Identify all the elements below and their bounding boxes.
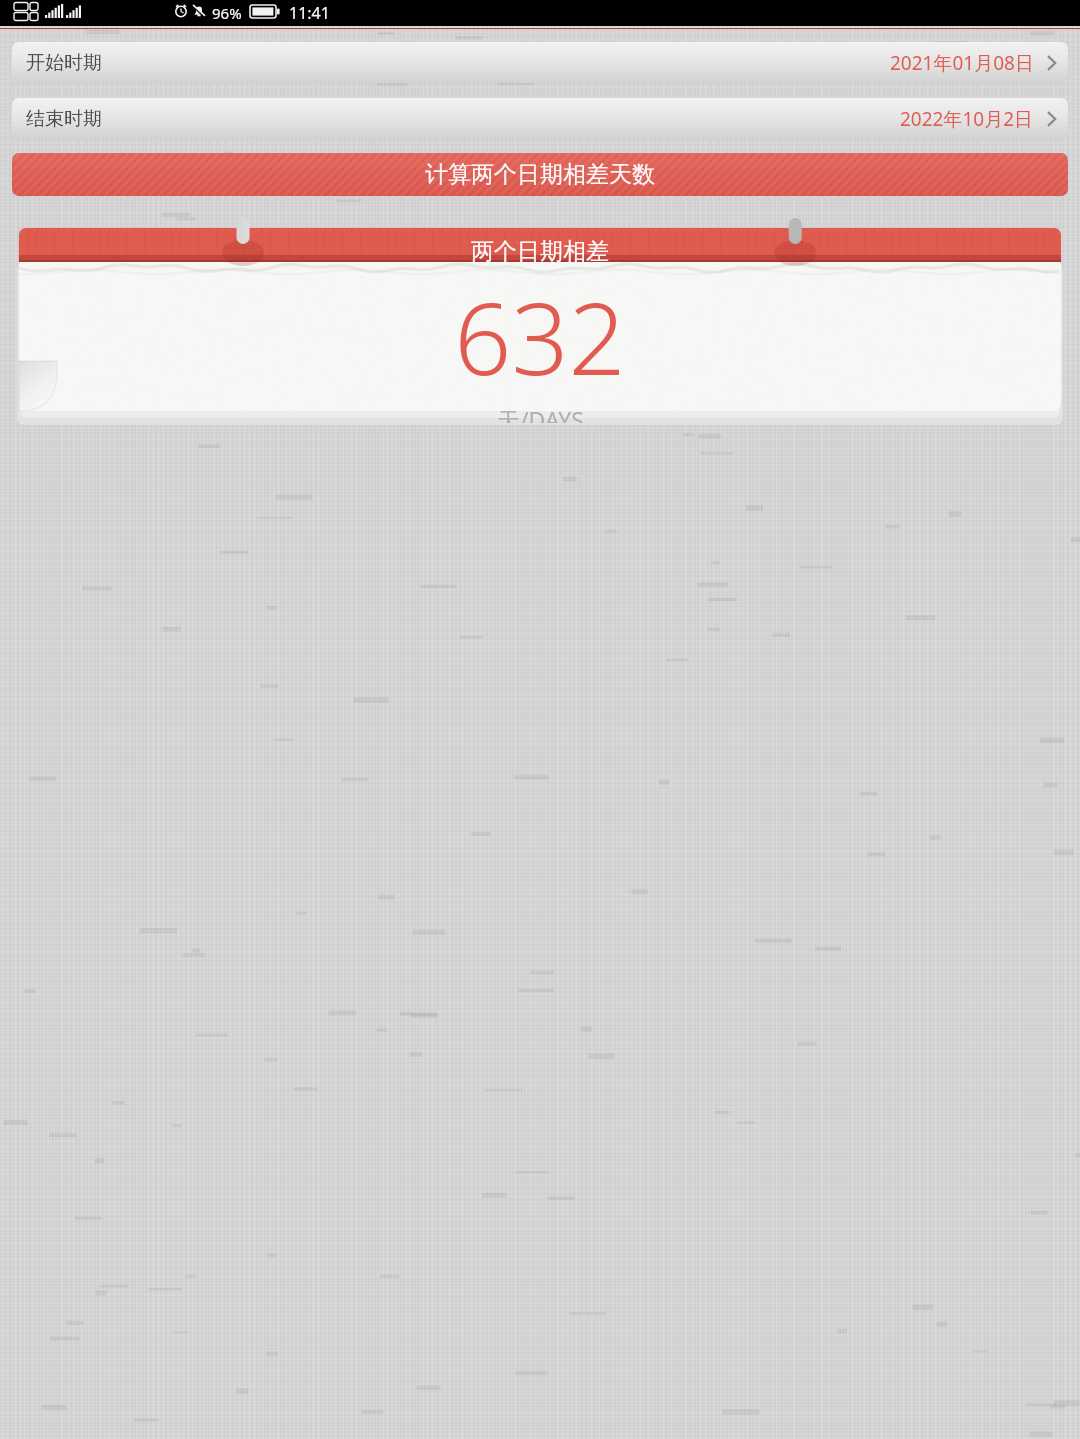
button[interactable]: 结束时期 [12,98,1068,139]
staticText: 开始时期 [26,51,102,75]
staticText: 2022年10月2日 [900,106,1034,132]
staticText: 天/DAYS [497,404,584,423]
staticText: 632 [454,268,626,404]
staticText: 结束时期 [26,107,102,131]
staticText: 计算两个日期相差天数 [425,160,655,189]
staticText: 2021年01月08日 [890,50,1034,76]
staticText: 两个日期相差 [471,237,609,266]
button[interactable]: 开始时期 [12,42,1068,83]
staticText: 11:41 [289,2,330,24]
button[interactable]: 计算两个日期相差天数 [12,153,1068,196]
staticText: 96% [212,3,242,23]
